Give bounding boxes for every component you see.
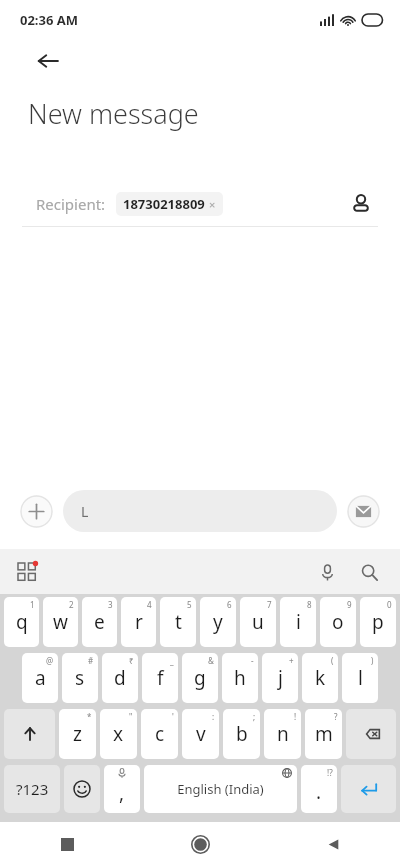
button[interactable]: ? xyxy=(305,709,342,759)
button[interactable]: !? xyxy=(301,765,337,813)
staticText: 1 xyxy=(30,599,35,610)
button[interactable]: + xyxy=(262,653,298,703)
staticText: f xyxy=(157,665,164,691)
button[interactable]: 1 xyxy=(4,597,39,647)
staticText: u xyxy=(252,609,264,635)
button[interactable]: Keyboard tools xyxy=(10,555,44,589)
staticText: 4 xyxy=(147,599,152,610)
button[interactable]: Recent apps xyxy=(0,822,134,866)
button[interactable]: 2 xyxy=(43,597,78,647)
button[interactable]: @ xyxy=(22,653,58,703)
staticText: o xyxy=(332,609,344,635)
button[interactable]: # xyxy=(62,653,98,703)
button[interactable]: Contacts xyxy=(344,187,378,221)
button[interactable]: ' xyxy=(141,709,178,759)
staticText: g xyxy=(194,665,206,691)
button[interactable]: & xyxy=(182,653,218,703)
staticText: t xyxy=(175,609,182,635)
staticText: z xyxy=(73,721,82,747)
button[interactable]: _ xyxy=(142,653,178,703)
staticText: w xyxy=(53,609,68,635)
staticText: + xyxy=(289,655,294,666)
button[interactable]: 8 xyxy=(280,597,316,647)
staticText: - xyxy=(251,655,254,666)
staticText: ' xyxy=(172,711,174,722)
staticText: 6 xyxy=(227,599,232,610)
staticText: a xyxy=(35,665,46,691)
staticText: c xyxy=(155,721,165,747)
button[interactable]: 0 xyxy=(360,597,396,647)
staticText: p xyxy=(372,609,384,635)
other: Backspace xyxy=(346,709,396,759)
staticText: 2 xyxy=(69,599,74,610)
staticText: @ xyxy=(46,655,54,666)
button[interactable]: Voice input xyxy=(310,555,344,589)
staticText: Recipient: xyxy=(36,194,106,214)
staticText: !? xyxy=(327,767,333,778)
staticText: 7 xyxy=(267,599,272,610)
staticText: s xyxy=(75,665,85,691)
staticText: . xyxy=(316,779,322,805)
staticText: m xyxy=(315,721,333,747)
button[interactable]: " xyxy=(100,709,137,759)
button[interactable]: ?123 xyxy=(4,765,60,813)
button[interactable]: 9 xyxy=(320,597,356,647)
staticText: * xyxy=(87,711,92,722)
staticText: j xyxy=(278,665,283,691)
staticText: ?123 xyxy=(16,779,49,799)
staticText: 02:36 AM xyxy=(20,11,79,29)
button[interactable]: 7 xyxy=(240,597,276,647)
button[interactable]: ! xyxy=(264,709,301,759)
staticText: 18730218809 xyxy=(123,195,205,213)
button[interactable]: : xyxy=(182,709,219,759)
button[interactable]: Back xyxy=(28,41,68,81)
staticText: New message xyxy=(28,95,199,132)
staticText: b xyxy=(236,721,248,747)
button[interactable]: 6 xyxy=(200,597,236,647)
staticText: i xyxy=(296,609,301,635)
staticText: q xyxy=(16,609,28,635)
button[interactable]: L xyxy=(63,490,337,532)
button[interactable]: Send message xyxy=(347,495,380,528)
staticText: 8 xyxy=(307,599,312,610)
staticText: × xyxy=(209,197,216,212)
button[interactable]: - xyxy=(222,653,258,703)
staticText: ! xyxy=(294,711,297,722)
staticText: d xyxy=(114,665,126,691)
staticText: y xyxy=(213,609,223,635)
staticText: n xyxy=(277,721,289,747)
button[interactable]: Recipient: xyxy=(22,182,378,226)
button[interactable] xyxy=(4,709,55,759)
staticText: 9 xyxy=(347,599,352,610)
staticText: ) xyxy=(371,655,374,666)
button[interactable]: ; xyxy=(223,709,260,759)
button[interactable]: Search xyxy=(352,555,386,589)
staticText: r xyxy=(135,609,143,635)
button[interactable]: English (India) xyxy=(144,765,297,813)
button[interactable]: Add attachment xyxy=(20,495,53,528)
button[interactable]: Home xyxy=(134,822,267,866)
button[interactable]: , xyxy=(104,765,140,813)
button[interactable]: 3 xyxy=(82,597,117,647)
staticText: 0 xyxy=(387,599,392,610)
button[interactable]: Back xyxy=(267,822,400,866)
staticText: h xyxy=(234,665,246,691)
staticText: " xyxy=(129,711,133,722)
staticText: v xyxy=(196,721,206,747)
staticText: ? xyxy=(334,711,338,722)
staticText: 3 xyxy=(108,599,113,610)
button[interactable]: * xyxy=(59,709,96,759)
button[interactable]: ( xyxy=(302,653,338,703)
staticText: x xyxy=(113,721,124,747)
button[interactable]: Backspace xyxy=(346,709,396,759)
button[interactable]: 5 xyxy=(160,597,196,647)
staticText: e xyxy=(94,609,105,635)
staticText: : xyxy=(212,711,215,722)
staticText: English (India) xyxy=(177,780,264,798)
button[interactable]: ) xyxy=(342,653,378,703)
button[interactable]: 4 xyxy=(121,597,156,647)
button[interactable]: Enter xyxy=(341,765,396,813)
button[interactable]: Emoji xyxy=(64,765,100,813)
staticText: ₹ xyxy=(129,655,134,666)
button[interactable]: ₹ xyxy=(102,653,138,703)
